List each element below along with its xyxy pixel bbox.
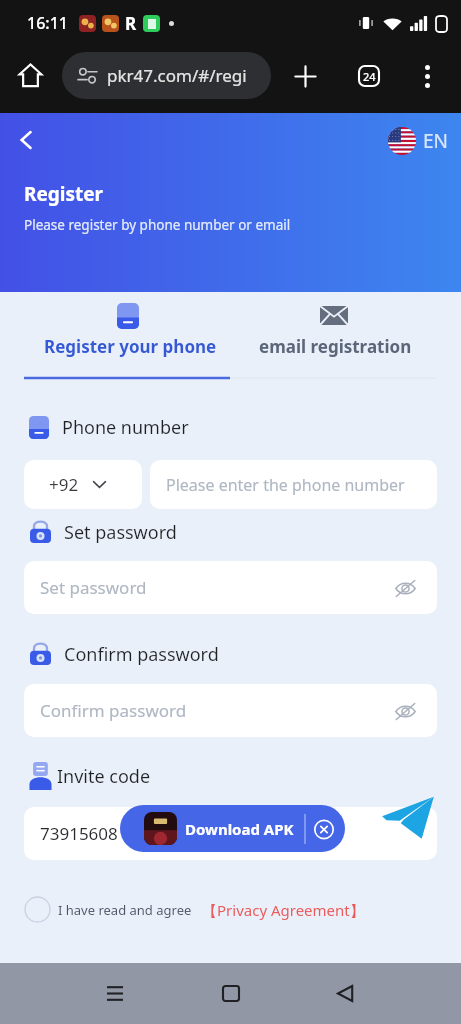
button[interactable]: Register your phone (0, 292, 230, 379)
staticText: +92 (49, 473, 79, 496)
button[interactable]: Recents (93, 971, 137, 1015)
button[interactable]: Back (6, 120, 46, 160)
button[interactable]: +92 (24, 460, 142, 509)
staticText: Download APK (185, 819, 294, 839)
staticText: Invite code (57, 764, 151, 789)
staticText: Register (24, 181, 104, 207)
staticText: EN (423, 128, 449, 154)
button[interactable]: Close (314, 814, 334, 844)
button[interactable]: Confirm password (24, 684, 437, 737)
button[interactable]: Tabs (348, 55, 390, 97)
staticText: Phone number (62, 415, 189, 440)
staticText: Please register by phone number or email (24, 216, 291, 234)
button[interactable]: Set password (24, 561, 437, 614)
staticText: Confirm password (40, 699, 187, 722)
button[interactable]: Download APK (120, 805, 345, 852)
staticText: R (125, 12, 137, 35)
button[interactable]: 73915608 (24, 807, 437, 860)
staticText: 24 (363, 69, 376, 84)
button[interactable]: Back (323, 971, 367, 1015)
button[interactable]: email registration (231, 292, 461, 379)
button[interactable]: Home (8, 52, 53, 97)
button[interactable]: EN (384, 123, 453, 159)
staticText: Register your phone (44, 335, 217, 358)
staticText: 【Privacy Agreement】 (202, 900, 365, 920)
button[interactable]: Show password (391, 697, 419, 725)
staticText: 73915608 (40, 822, 118, 845)
staticText: Set password (40, 576, 147, 599)
staticText: I have read and agree (58, 901, 192, 919)
button[interactable]: More options (406, 55, 448, 97)
button[interactable]: Home (209, 971, 253, 1015)
button[interactable]: New tab (284, 55, 326, 97)
staticText: pkr47.com/#/regi (107, 64, 247, 87)
button[interactable]: Telegram (375, 784, 441, 850)
staticText: email registration (259, 335, 412, 358)
button[interactable]: pkr47.com/#/regi (62, 52, 271, 99)
button[interactable]: I have read and agree (24, 896, 365, 923)
staticText: Set password (64, 520, 177, 545)
staticText: Please enter the phone number (166, 474, 405, 496)
button[interactable]: Please enter the phone number (150, 460, 437, 509)
staticText: Confirm password (64, 642, 219, 667)
staticText: 16:11 (27, 12, 68, 34)
button[interactable]: Show password (391, 574, 419, 602)
